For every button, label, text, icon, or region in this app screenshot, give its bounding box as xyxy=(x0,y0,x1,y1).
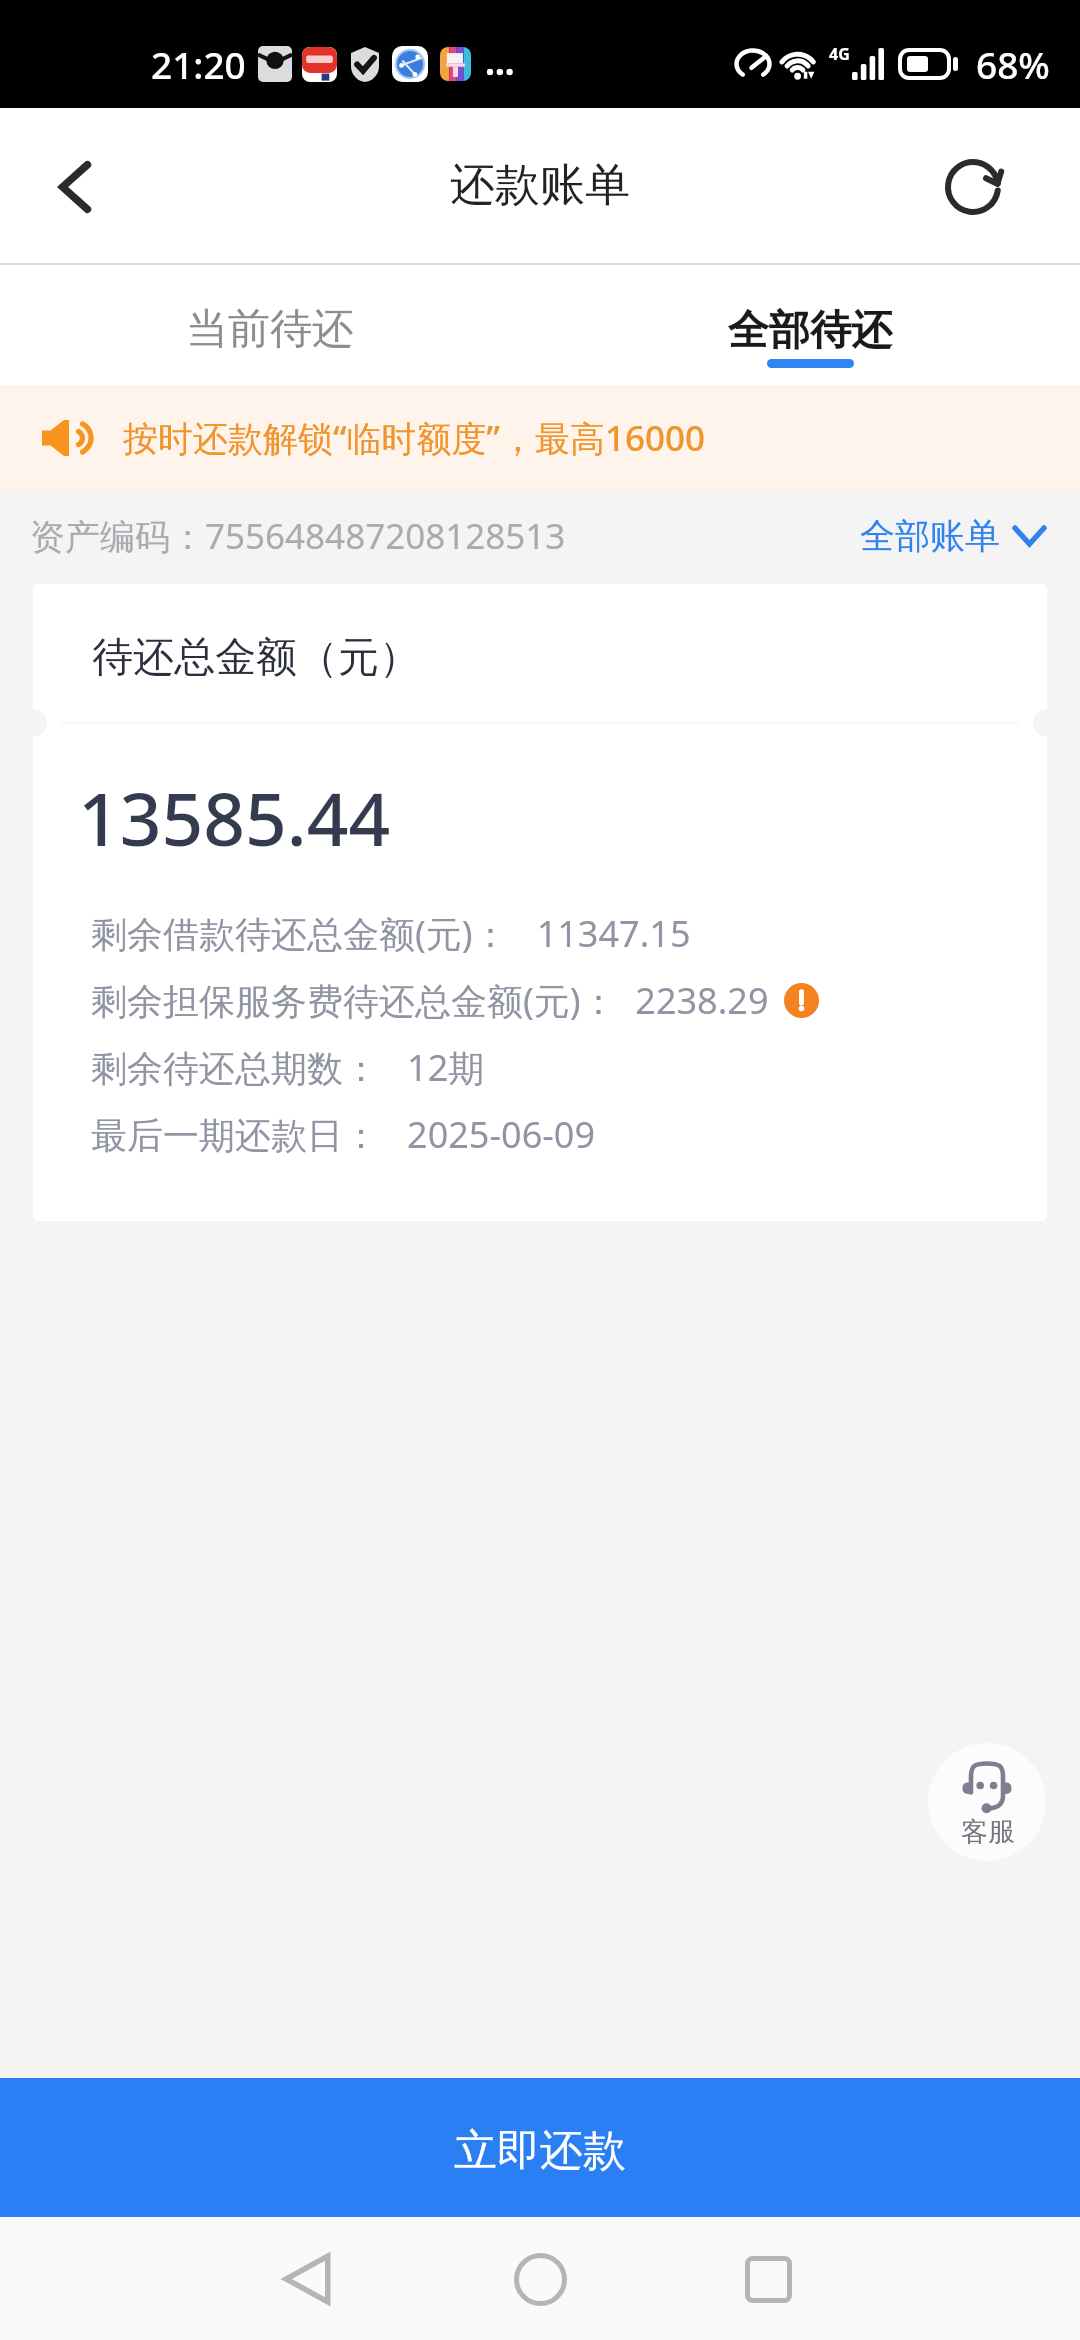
staticText: 13585.44 xyxy=(78,768,391,867)
button[interactable]: 最近任务 xyxy=(713,2224,823,2334)
staticText: 客服 xyxy=(961,1815,1015,1849)
button[interactable]: 立即还款 xyxy=(0,2078,1080,2217)
button[interactable]: 返回 xyxy=(253,2224,363,2334)
button[interactable]: 返回 xyxy=(26,139,122,235)
staticText: 剩余担保服务费待还总金额(元)： 2238.29 xyxy=(91,976,769,1025)
button[interactable]: 刷新 xyxy=(925,139,1021,235)
staticText: 立即还款 xyxy=(454,2124,626,2178)
staticText: 剩余待还总期数： 12期 xyxy=(91,1043,485,1092)
staticText: 资产编码：755648487208128513 xyxy=(30,512,566,560)
staticText: 全部待还 xyxy=(728,305,892,357)
staticText: 待还总金额（元） xyxy=(92,632,420,684)
staticText: 68% xyxy=(976,39,1050,89)
button[interactable]: 主页 xyxy=(485,2224,595,2334)
staticText: 还款账单 xyxy=(450,157,630,214)
staticText: 4G xyxy=(829,43,850,65)
button[interactable]: 按时还款解锁“临时额度”，最高16000 xyxy=(0,385,1080,491)
button[interactable]: 全部账单 xyxy=(860,491,1046,584)
staticText: 21:20 xyxy=(151,39,246,89)
staticText: 当前待还 xyxy=(186,303,354,356)
button[interactable]: 当前待还 xyxy=(0,265,540,385)
button[interactable]: 全部待还 xyxy=(540,265,1080,385)
staticText: 按时还款解锁“临时额度”，最高16000 xyxy=(123,414,705,462)
staticText: 剩余借款待还总金额(元)： 11347.15 xyxy=(91,909,691,958)
staticText: 最后一期还款日： 2025-06-09 xyxy=(91,1110,596,1159)
button[interactable]: 客服 xyxy=(928,1743,1046,1861)
staticText: 全部账单 xyxy=(860,514,1000,558)
